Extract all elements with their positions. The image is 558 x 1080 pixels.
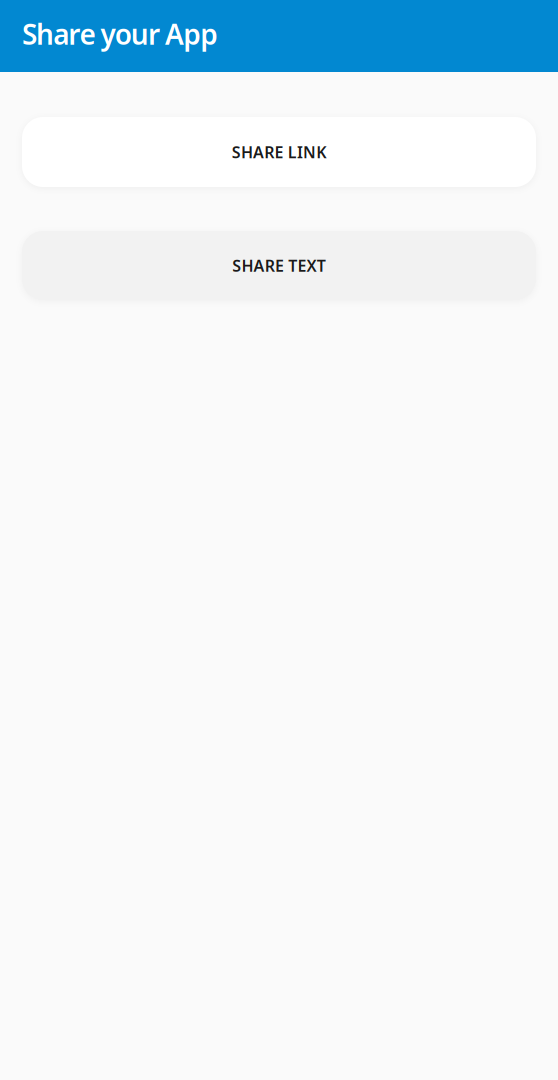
staticText: SHARE TEXT — [232, 255, 326, 276]
staticText: SHARE LINK — [232, 141, 326, 163]
button[interactable]: SHARE TEXT — [22, 231, 536, 300]
button[interactable]: SHARE LINK — [22, 117, 536, 187]
staticText: Share your App — [22, 15, 218, 53]
